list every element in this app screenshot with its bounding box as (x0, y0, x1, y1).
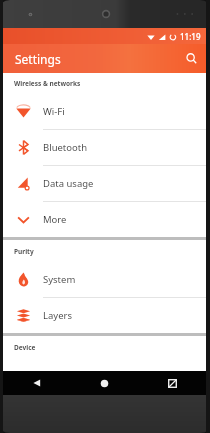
staticText: Wireless & networks (14, 79, 81, 88)
button[interactable]: Bluetooth (3, 130, 206, 165)
button[interactable]: System (3, 262, 206, 297)
staticText: Wi-Fi (43, 105, 65, 118)
button[interactable]: Back (3, 371, 70, 395)
button[interactable]: Data usage (3, 166, 206, 201)
staticText: Settings (15, 51, 61, 67)
staticText: Layers (43, 309, 72, 322)
staticText: Data usage (43, 177, 94, 190)
staticText: More (43, 213, 67, 226)
button[interactable]: Layers (3, 298, 206, 333)
button[interactable]: Recent apps (138, 371, 206, 395)
button[interactable]: Home (70, 371, 138, 395)
button[interactable]: Wi-Fi (3, 94, 206, 129)
staticText: Bluetooth (43, 141, 88, 154)
staticText: 11:19 (180, 31, 201, 42)
button[interactable]: More (3, 202, 206, 237)
staticText: Device (14, 343, 36, 352)
button[interactable]: Search (177, 44, 206, 73)
staticText: Purity (14, 247, 34, 256)
staticText: System (43, 273, 76, 286)
